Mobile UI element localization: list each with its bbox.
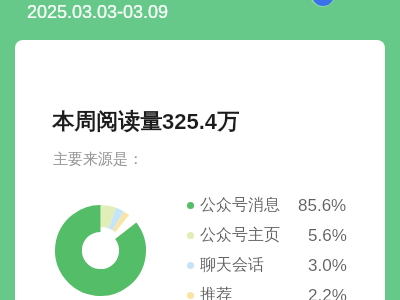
staticText: 2025.03.03-03.09 <box>27 2 169 22</box>
staticText: 公众号消息 <box>200 195 280 215</box>
button[interactable]: 公众号主页 <box>187 224 347 246</box>
staticText: 2.2% <box>308 286 347 300</box>
button[interactable]: Profile avatar <box>310 0 335 7</box>
staticText: 3.0% <box>308 256 347 275</box>
other: Reading source breakdown chart <box>55 205 146 296</box>
button[interactable]: 聊天会话 <box>187 254 347 276</box>
staticText: 本周阅读量325.4万 <box>52 108 240 136</box>
button[interactable]: 公众号消息 <box>187 194 347 216</box>
staticText: 主要来源是： <box>53 150 143 169</box>
staticText: 5.6% <box>308 226 347 245</box>
button[interactable]: 推荐 <box>187 284 347 300</box>
staticText: 公众号主页 <box>200 225 280 245</box>
staticText: 推荐 <box>200 285 232 300</box>
staticText: 85.6% <box>298 196 347 215</box>
staticText: 聊天会话 <box>200 255 264 275</box>
